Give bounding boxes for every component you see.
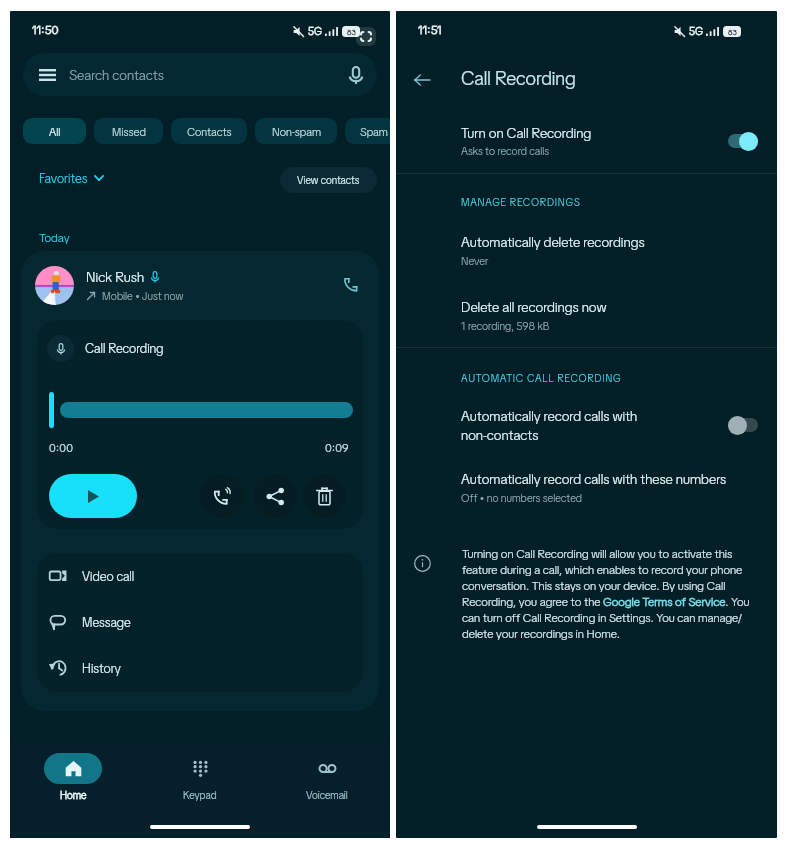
staticText: 83 xyxy=(347,27,356,37)
button[interactable]: Turn on Call Recording xyxy=(728,131,759,151)
staticText: Never xyxy=(461,254,489,268)
button[interactable]: Call back xyxy=(200,474,244,518)
button[interactable]: Delete all recordings now xyxy=(396,298,777,333)
button[interactable]: Automatically record calls with non-cont… xyxy=(396,401,777,449)
button[interactable]: Keypad xyxy=(161,753,239,802)
button[interactable]: Back xyxy=(405,63,439,97)
button[interactable]: Missed xyxy=(94,118,163,144)
staticText: Turn on Call Recording xyxy=(461,124,592,142)
staticText: Automatically delete recordings xyxy=(461,233,645,251)
button[interactable]: Video call xyxy=(37,553,363,599)
staticText: Voicemail xyxy=(306,788,348,802)
button[interactable]: Automatically delete recordings xyxy=(396,233,777,268)
staticText: View contacts xyxy=(297,173,360,187)
staticText: Search contacts xyxy=(69,66,164,84)
staticText: Call Recording xyxy=(461,66,576,91)
staticText: Message xyxy=(82,614,131,631)
staticText: 11:51 xyxy=(418,22,442,38)
button[interactable]: Search contacts xyxy=(23,53,377,96)
staticText: Automatically record calls with these nu… xyxy=(461,470,727,488)
button[interactable]: View contacts xyxy=(280,167,377,193)
button[interactable]: Delete xyxy=(302,474,346,518)
staticText: Call Recording xyxy=(85,340,164,357)
button[interactable]: Play xyxy=(49,474,137,518)
button[interactable]: Call xyxy=(335,270,365,300)
staticText: Off • no numbers selected xyxy=(461,491,583,505)
button[interactable]: Home xyxy=(34,753,112,802)
button[interactable]: All xyxy=(23,118,86,144)
button[interactable]: Voice search xyxy=(344,63,368,87)
button[interactable]: Screenshot xyxy=(356,27,376,46)
button[interactable]: Favorites xyxy=(39,169,104,187)
staticText: Video call xyxy=(82,568,135,585)
button[interactable]: Contacts xyxy=(171,118,247,144)
button[interactable]: Nick Rush xyxy=(21,251,379,319)
staticText: Non-spam xyxy=(272,124,321,139)
staticText: Keypad xyxy=(183,788,217,802)
button[interactable]: Message xyxy=(37,599,363,645)
staticText: Spam xyxy=(360,124,388,139)
staticText: Today xyxy=(39,230,70,246)
button[interactable]: Automatically record calls with these nu… xyxy=(396,470,777,505)
staticText: MANAGE RECORDINGS xyxy=(461,195,581,209)
staticText: Home xyxy=(60,788,87,802)
button[interactable]: Voicemail xyxy=(288,753,366,802)
staticText: Mobile • Just now xyxy=(102,289,184,303)
staticText: All xyxy=(49,124,61,139)
staticText: AUTOMATIC CALL RECORDING xyxy=(461,371,622,385)
staticText: 5G xyxy=(689,24,703,38)
staticText: Asks to record calls xyxy=(461,144,550,158)
button[interactable]: Share xyxy=(253,474,297,518)
staticText: 83 xyxy=(728,27,737,37)
staticText: 1 recording, 598 kB xyxy=(461,319,550,333)
button[interactable]: Turn on Call Recording xyxy=(396,116,777,166)
button[interactable]: Automatically record calls with non-cont… xyxy=(728,415,759,435)
staticText: 0:00 xyxy=(49,440,73,455)
staticText: Contacts xyxy=(187,124,232,139)
button[interactable]: Non-spam xyxy=(255,118,337,144)
staticText: 0:09 xyxy=(325,440,349,455)
staticText: Nick Rush xyxy=(86,268,145,286)
staticText: Automatically record calls with non-cont… xyxy=(461,407,728,444)
staticText: Turning on Call Recording will allow you… xyxy=(462,546,758,642)
staticText: 11:50 xyxy=(32,22,59,38)
button[interactable]: History xyxy=(37,645,363,691)
staticText: Delete all recordings now xyxy=(461,298,607,316)
staticText: History xyxy=(82,660,121,677)
staticText: Missed xyxy=(112,124,146,139)
staticText: 5G xyxy=(308,24,322,38)
button[interactable]: Spam xyxy=(345,118,390,144)
staticText: Favorites xyxy=(39,170,88,187)
